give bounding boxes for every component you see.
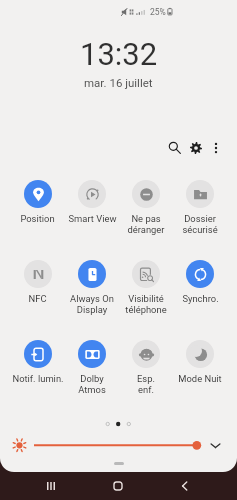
button[interactable]: Dolby Atmos (65, 340, 119, 395)
staticText: Smart View (68, 213, 117, 224)
button[interactable]: Ne pas déranger (119, 180, 173, 235)
button[interactable]: Smart View (65, 180, 119, 224)
staticText: Position (20, 213, 55, 224)
button[interactable]: Notif. lumin. (10, 340, 65, 384)
button[interactable]: Back (168, 472, 200, 500)
button[interactable]: Settings (182, 134, 209, 161)
staticText: Esp. enf. (137, 373, 155, 395)
staticText: Ne pas déranger (127, 213, 165, 235)
staticText: Dolby Atmos (78, 373, 106, 395)
staticText: Notif. lumin. (12, 373, 64, 384)
button[interactable]: More options (202, 134, 229, 161)
button[interactable]: Expand brightness settings (202, 433, 228, 457)
staticText: 13:32 (80, 36, 158, 72)
button[interactable]: Search (161, 134, 188, 161)
staticText: Synchro. (182, 293, 219, 304)
button[interactable]: Mode Nuit (173, 340, 227, 384)
staticText: Dossier sécurisé (182, 213, 218, 235)
button[interactable]: Home (102, 472, 134, 500)
staticText: Mode Nuit (178, 373, 222, 384)
staticText: 25% (150, 7, 166, 17)
button[interactable]: Dossier sécurisé (173, 180, 227, 235)
staticText: Visibilité téléphone (125, 293, 167, 315)
staticText: NFC (28, 293, 47, 304)
staticText: Always On Display (70, 293, 114, 315)
staticText: mar. 16 juillet (84, 76, 153, 89)
button[interactable]: Recent apps (35, 472, 67, 500)
button[interactable]: Synchro. (173, 260, 227, 304)
button[interactable]: Position (10, 180, 65, 224)
button[interactable]: NFC (10, 260, 65, 304)
button[interactable]: Always On Display (65, 260, 119, 315)
button[interactable]: Visibilité téléphone (119, 260, 173, 315)
button[interactable]: Esp. enf. (119, 340, 173, 395)
button[interactable]: Brightness (0, 433, 237, 457)
